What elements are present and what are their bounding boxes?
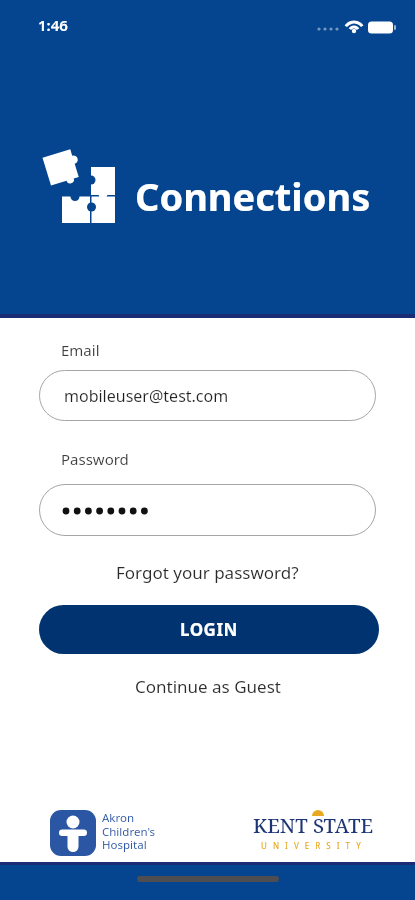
staticText: U N I V E R S I T Y [261,840,363,851]
staticText: LOGIN [180,618,238,641]
staticText: Password [61,449,129,469]
button[interactable]: mobileuser@test.com [39,370,376,421]
staticText: Email [61,340,100,360]
button[interactable]: Forgot your password? [0,561,415,584]
button[interactable]: Continue as Guest [0,675,415,698]
button[interactable]: Akron Children's Hospital [50,810,250,860]
staticText: Akron Children's Hospital [102,810,156,852]
staticText: KENT STATE [253,812,374,839]
button[interactable]: LOGIN [39,605,379,654]
staticText: mobileuser@test.com [64,385,229,407]
button[interactable]: KENT STATE [253,800,378,856]
staticText: Continue as Guest [135,675,281,698]
staticText: Forgot your password? [116,561,299,584]
staticText: 1:46 [38,15,68,35]
button[interactable] [39,484,376,536]
staticText: Connections [135,170,371,222]
